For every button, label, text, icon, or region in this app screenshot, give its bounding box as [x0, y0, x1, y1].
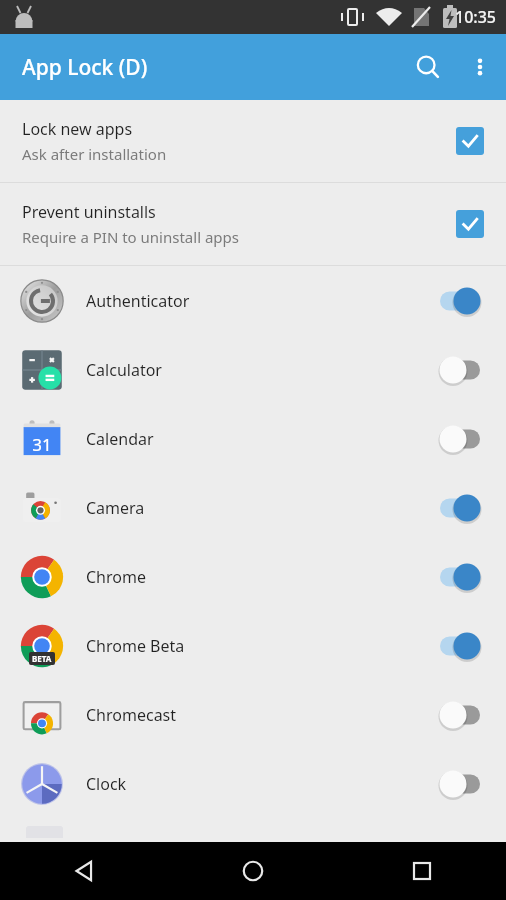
staticText: Chrome Beta [86, 635, 428, 657]
staticText: Calendar [86, 428, 428, 450]
staticText: Chrome [86, 566, 428, 588]
staticText: Ask after installation [22, 144, 167, 164]
staticText: BETA [32, 653, 52, 664]
staticText: Chromecast [86, 704, 428, 726]
staticText: Authenticator [86, 290, 428, 312]
button[interactable]: More options [454, 41, 506, 93]
button[interactable]: Chrome [0, 542, 506, 611]
button[interactable]: Back [0, 842, 168, 900]
staticText: 10:35 [455, 6, 496, 28]
button[interactable]: BETA [0, 611, 506, 680]
staticText: 31 [19, 433, 65, 456]
button[interactable]: Calculator [0, 335, 506, 404]
staticText: Clock [86, 773, 428, 795]
button[interactable]: 31 [0, 404, 506, 473]
button[interactable]: Search [402, 41, 454, 93]
staticText: Require a PIN to uninstall apps [22, 227, 239, 247]
staticText: Prevent uninstalls [22, 201, 156, 223]
button[interactable]: Authenticator [0, 266, 506, 335]
staticText: Calculator [86, 359, 428, 381]
staticText: Lock new apps [22, 118, 133, 140]
button[interactable]: Lock new apps [0, 100, 506, 182]
button[interactable]: Clock [0, 749, 506, 818]
button[interactable]: Chromecast [0, 680, 506, 749]
button[interactable]: Recent apps [337, 842, 506, 900]
button[interactable]: Home [168, 842, 337, 900]
button[interactable]: Prevent uninstalls [0, 183, 506, 265]
button[interactable]: Camera [0, 473, 506, 542]
staticText: Camera [86, 497, 428, 519]
staticText: App Lock (D) [22, 53, 148, 82]
